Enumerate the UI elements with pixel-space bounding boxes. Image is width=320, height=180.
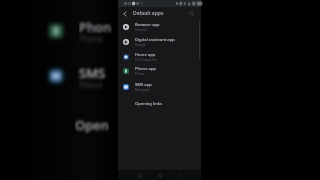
staticText: Home app	[135, 52, 156, 58]
staticText: SMS app	[135, 82, 152, 88]
button[interactable]: Phone app	[118, 64, 201, 78]
staticText: Pixel Launcher	[135, 58, 157, 62]
button[interactable]: Search	[186, 8, 197, 19]
staticText: Digital assistant app	[135, 37, 175, 43]
staticText: SMS	[79, 64, 106, 82]
staticText: Default apps	[133, 10, 164, 17]
staticText: Phone	[135, 72, 145, 76]
staticText: Phone	[79, 33, 104, 44]
staticText: Chrome	[135, 28, 147, 32]
staticText: Google	[135, 43, 146, 47]
staticText: Opening links	[135, 101, 162, 107]
button[interactable]: Opening links	[118, 99, 201, 109]
staticText: Open	[75, 116, 109, 134]
button[interactable]: Back	[119, 8, 130, 19]
staticText: Browser app	[135, 22, 160, 28]
button[interactable]: Digital assistant app	[118, 35, 201, 49]
staticText: Messa	[79, 79, 103, 90]
button[interactable]: Browser app	[118, 20, 201, 34]
button[interactable]: Home	[155, 170, 165, 180]
button[interactable]: SMS app	[118, 80, 201, 94]
staticText: Phon	[79, 18, 112, 36]
button[interactable]: Back	[175, 170, 185, 180]
button[interactable]: Recent apps	[134, 170, 144, 180]
staticText: Messages	[135, 88, 150, 92]
button[interactable]: Home app	[118, 50, 201, 64]
staticText: Phone app	[135, 66, 156, 72]
